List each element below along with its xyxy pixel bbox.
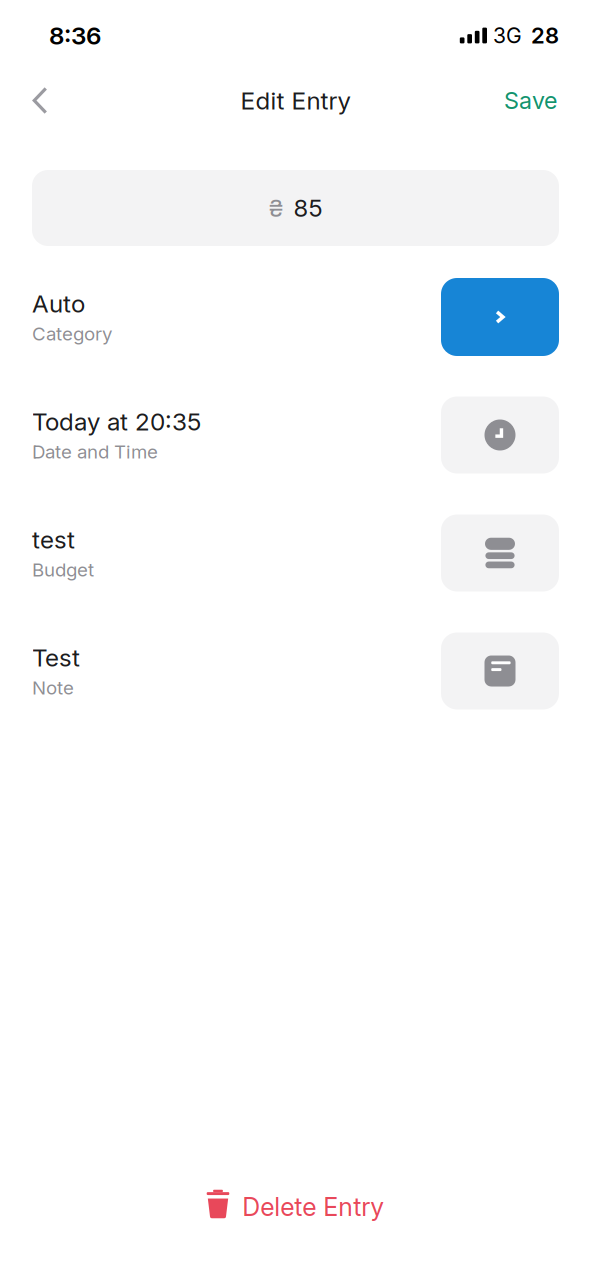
button[interactable]: Today at 20:35	[32, 396, 559, 474]
staticText: Date and Time	[32, 440, 158, 463]
staticText: Category	[32, 322, 112, 345]
staticText: Test	[32, 643, 80, 672]
staticText: Note	[32, 676, 74, 699]
staticText: 8:36	[49, 21, 101, 50]
staticText: Delete Entry	[242, 1192, 384, 1222]
staticText: Save	[504, 86, 557, 115]
button[interactable]: Save	[504, 75, 557, 125]
staticText: Edit Entry	[240, 86, 350, 115]
button[interactable]: Back	[17, 75, 63, 125]
staticText: test	[32, 525, 75, 554]
staticText: 85	[293, 193, 322, 222]
button[interactable]: test	[32, 514, 559, 592]
staticText: Auto	[32, 289, 85, 318]
button[interactable]: Delete Entry	[207, 1182, 384, 1232]
staticText: 28	[531, 22, 559, 49]
button[interactable]: Auto	[32, 278, 559, 356]
staticText: Budget	[32, 558, 94, 581]
staticText: 3G	[493, 23, 522, 48]
staticText: Today at 20:35	[32, 407, 201, 436]
button[interactable]: Test	[32, 632, 559, 710]
staticText: ₴	[268, 193, 283, 222]
